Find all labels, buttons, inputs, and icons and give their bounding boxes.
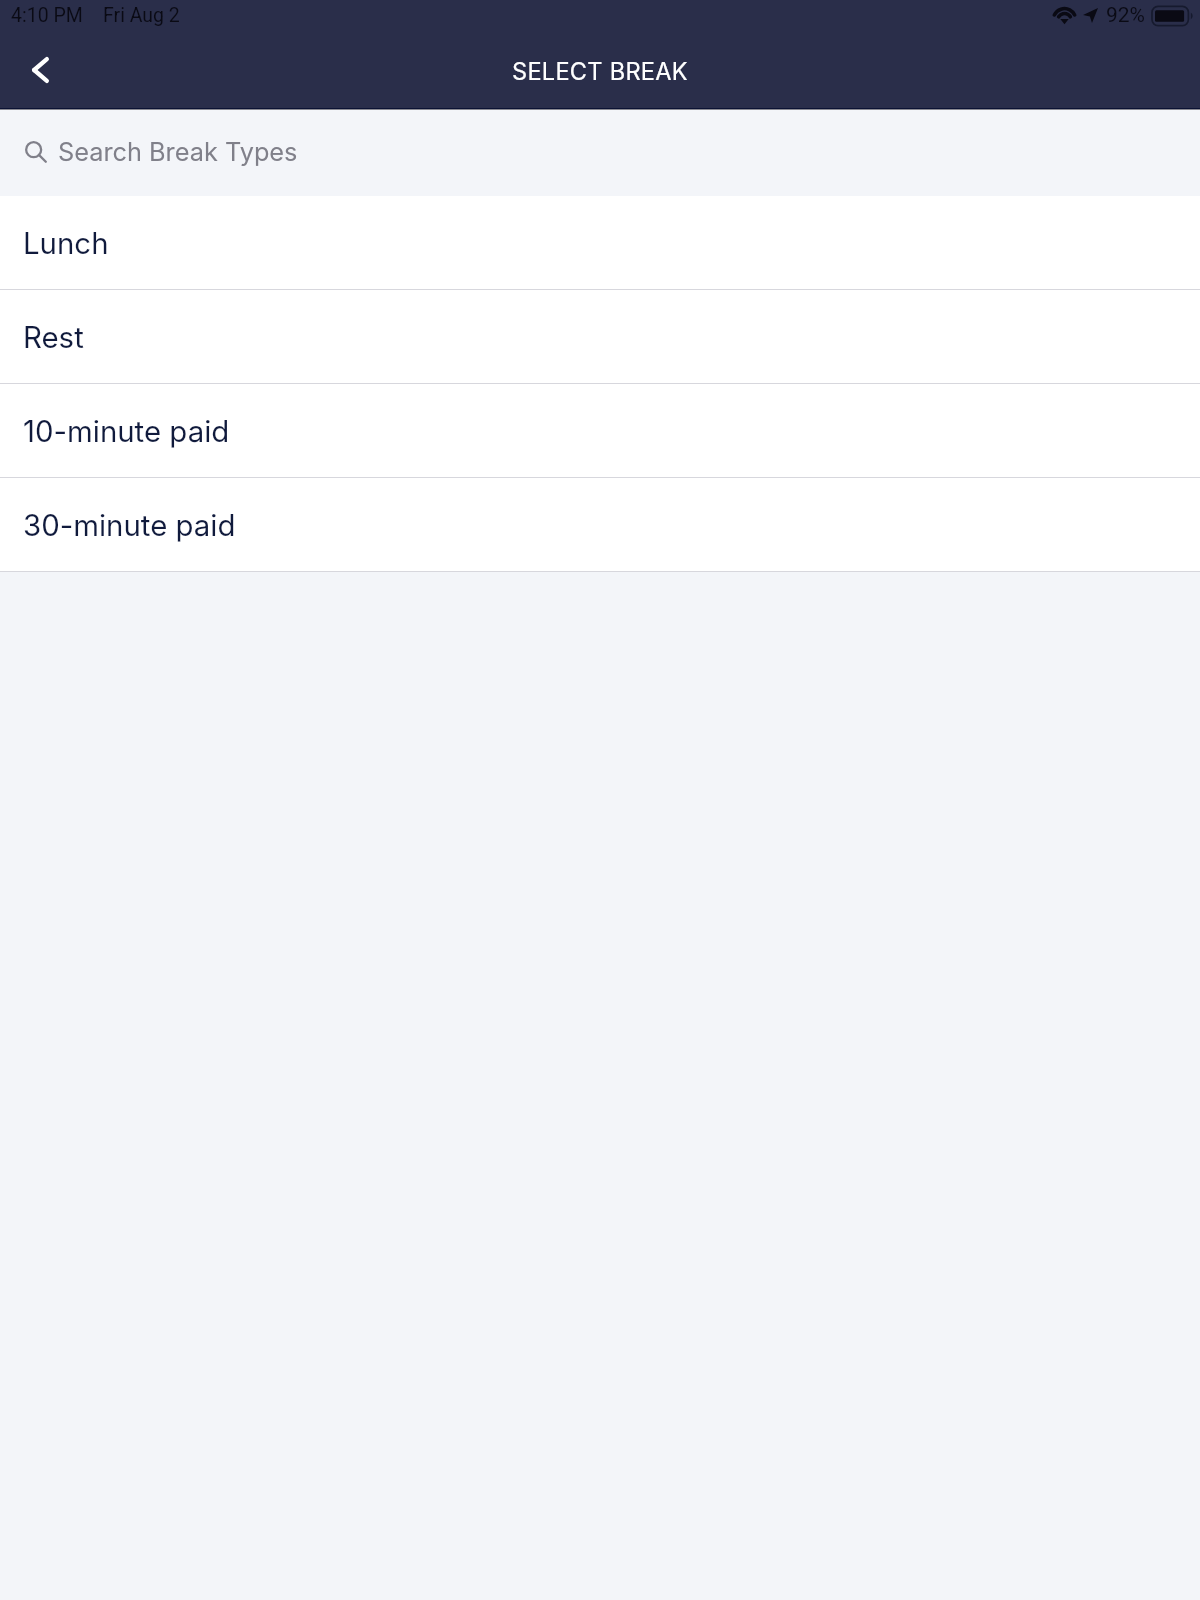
staticText: 92%: [1106, 3, 1145, 28]
button[interactable]: Search Break Types: [0, 110, 1200, 196]
button[interactable]: 10-minute paid: [0, 384, 1200, 477]
staticText: 10-minute paid: [23, 414, 230, 450]
staticText: Lunch: [23, 226, 109, 262]
staticText: 4:10 PM: [11, 4, 83, 27]
staticText: Search Break Types: [58, 136, 298, 167]
staticText: Fri Aug 2: [103, 4, 180, 27]
button[interactable]: Lunch: [0, 196, 1200, 289]
staticText: Rest: [23, 320, 84, 356]
button[interactable]: Rest: [0, 290, 1200, 383]
button[interactable]: 30-minute paid: [0, 478, 1200, 571]
staticText: SELECT BREAK: [512, 57, 688, 86]
button[interactable]: Back: [0, 30, 78, 108]
staticText: 30-minute paid: [23, 508, 236, 544]
